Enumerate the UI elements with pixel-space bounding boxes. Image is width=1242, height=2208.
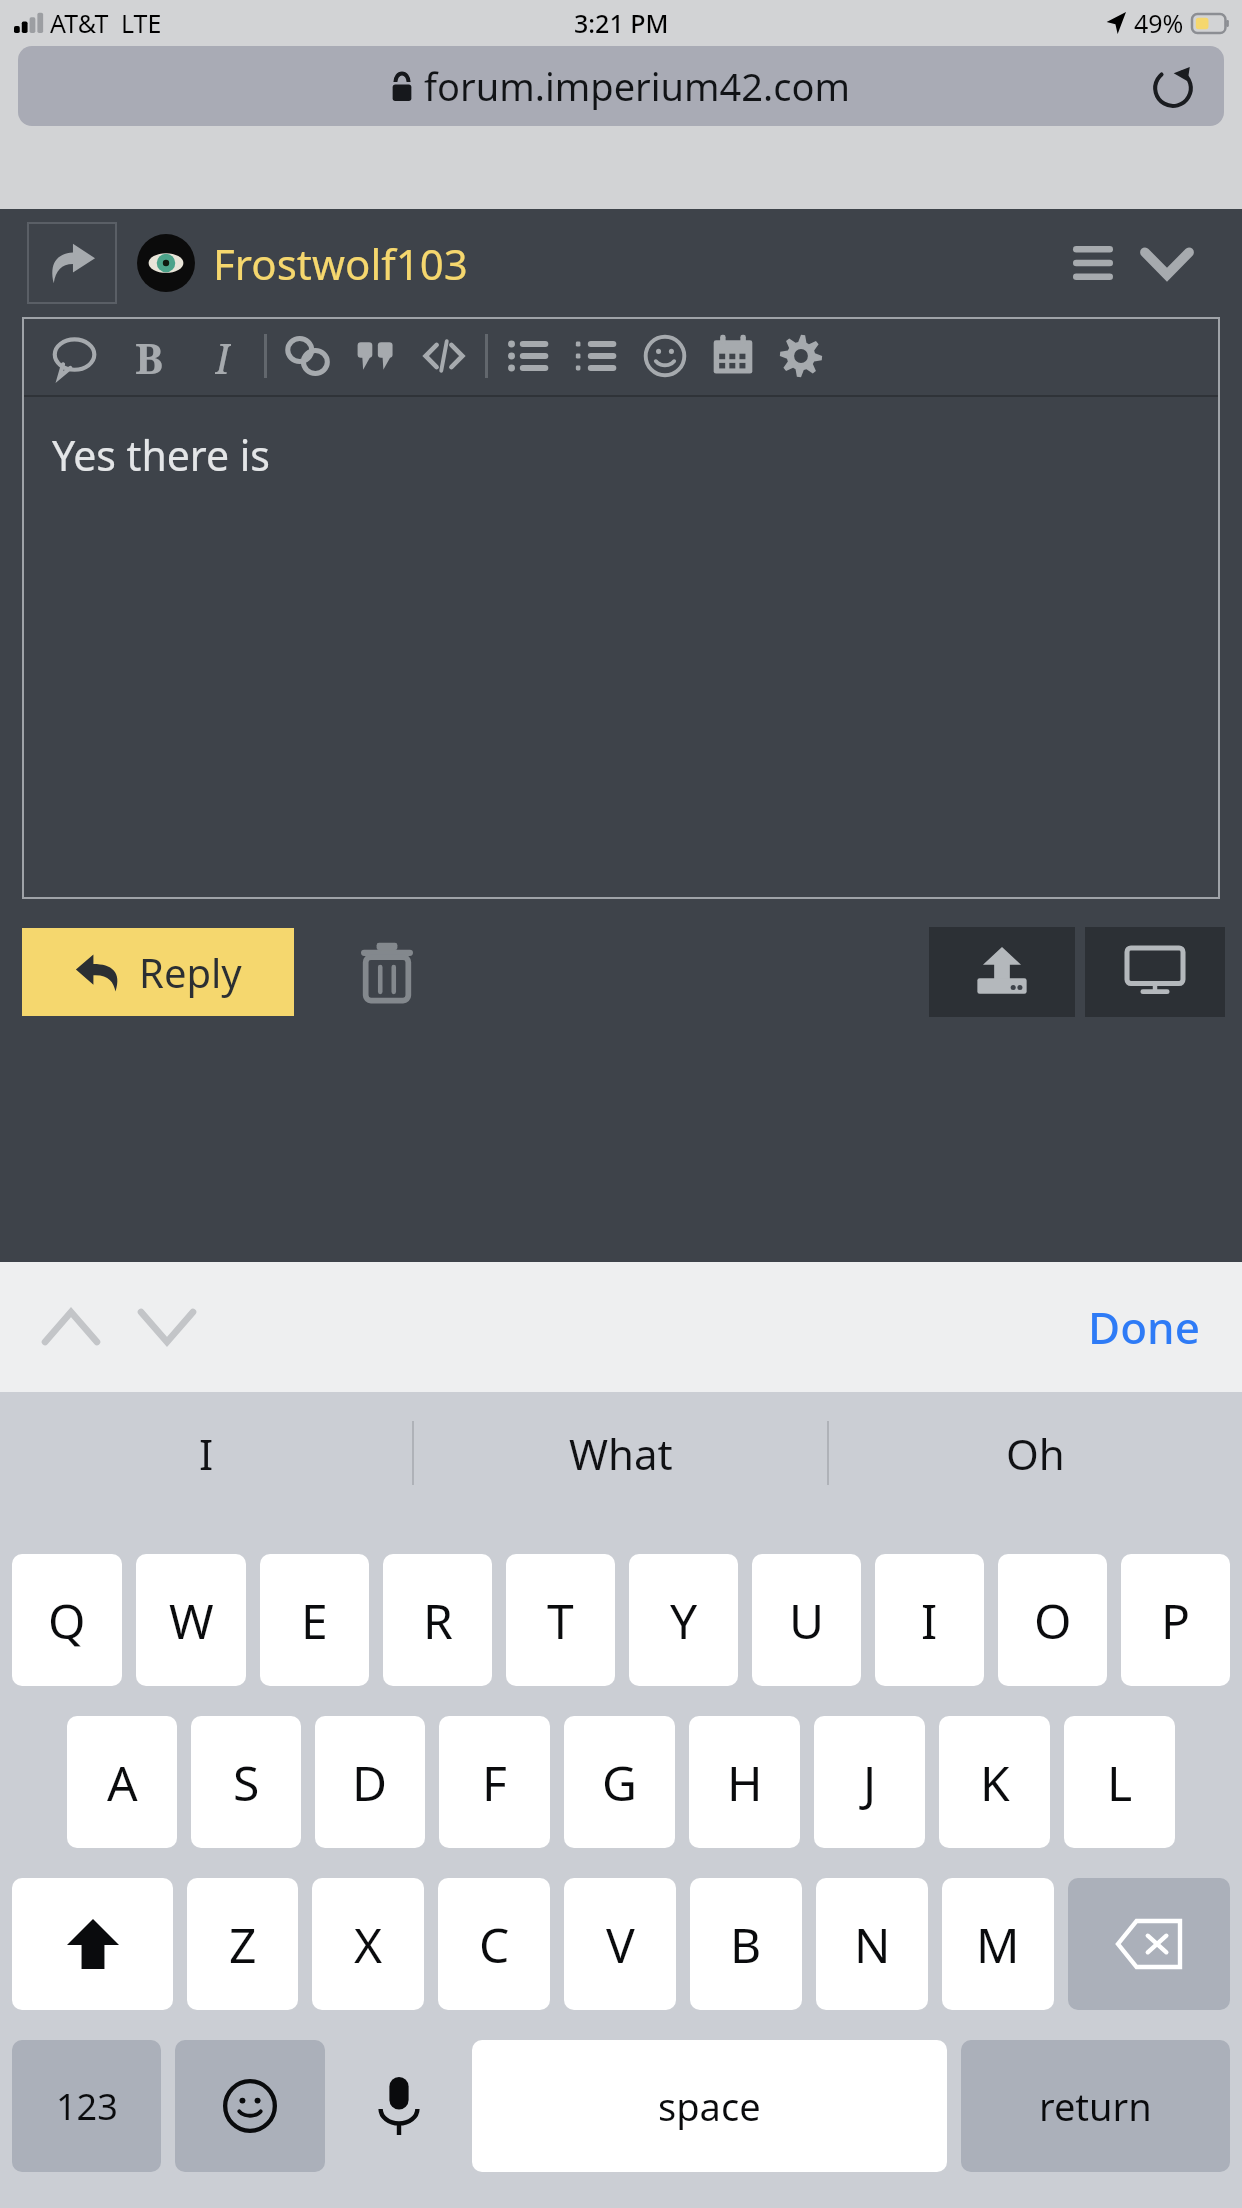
staticText: K [980, 1750, 1010, 1815]
button[interactable]: M [942, 1878, 1054, 2010]
staticText: E [301, 1588, 328, 1653]
staticText: forum.imperium42.com [424, 60, 851, 112]
staticText: L [1107, 1750, 1133, 1815]
staticText: I [199, 1425, 214, 1482]
staticText: Reply [139, 945, 242, 999]
button[interactable]: forum.imperium42.com [18, 46, 1224, 126]
button[interactable]: Reply [22, 928, 294, 1016]
button[interactable]: K [939, 1716, 1050, 1848]
button[interactable]: Delete [350, 932, 424, 1012]
button[interactable]: Y [629, 1554, 738, 1686]
button[interactable]: Format [570, 329, 624, 383]
staticText: N [854, 1912, 891, 1977]
button[interactable]: D [315, 1716, 425, 1848]
button[interactable]: Previous field [30, 1286, 112, 1368]
button[interactable]: S [191, 1716, 301, 1848]
staticText: I [921, 1588, 938, 1653]
staticText: S [233, 1750, 260, 1815]
staticText: O [1034, 1588, 1072, 1653]
button[interactable]: Preview [1085, 927, 1225, 1017]
button[interactable]: B [690, 1878, 802, 2010]
button[interactable]: Q [12, 1554, 122, 1686]
button[interactable]: Expand [1140, 236, 1194, 290]
button[interactable]: I [0, 1392, 412, 1514]
button[interactable]: Format [774, 329, 828, 383]
button[interactable]: Reload [1146, 59, 1200, 113]
button[interactable]: P [1121, 1554, 1230, 1686]
button[interactable]: I [196, 329, 250, 383]
staticText: LTE [121, 6, 162, 40]
staticText: J [863, 1750, 877, 1815]
staticText: F [482, 1750, 507, 1815]
staticText: V [606, 1912, 635, 1977]
button[interactable]: Upload [929, 927, 1075, 1017]
button[interactable]: What [414, 1392, 827, 1514]
button[interactable]: B [122, 329, 176, 383]
button[interactable]: F [439, 1716, 550, 1848]
staticText: 49% [1134, 6, 1184, 40]
button[interactable]: Oh [829, 1392, 1242, 1514]
button[interactable]: W [136, 1554, 246, 1686]
staticText: B [730, 1912, 762, 1977]
button[interactable]: X [312, 1878, 424, 2010]
button[interactable]: Done [1088, 1297, 1200, 1357]
staticText: U [789, 1588, 825, 1653]
button[interactable]: R [383, 1554, 492, 1686]
button[interactable]: C [438, 1878, 550, 2010]
staticText: Done [1088, 1297, 1200, 1357]
button[interactable]: T [506, 1554, 615, 1686]
staticText: X [354, 1912, 383, 1977]
button[interactable]: Format [638, 329, 692, 383]
button[interactable]: Share [27, 222, 117, 304]
button[interactable]: E [260, 1554, 369, 1686]
staticText: C [479, 1912, 510, 1977]
button[interactable]: Format [48, 329, 102, 383]
button[interactable]: A [67, 1716, 177, 1848]
button[interactable] [137, 234, 195, 292]
staticText: Yes there is [52, 427, 270, 483]
staticText: Y [670, 1588, 698, 1653]
button[interactable]: Format [502, 329, 556, 383]
button[interactable]: Format [349, 329, 403, 383]
button[interactable]: G [564, 1716, 675, 1848]
staticText: P [1161, 1588, 1191, 1653]
staticText: Q [48, 1588, 86, 1653]
button[interactable]: H [689, 1716, 800, 1848]
button[interactable]: I [875, 1554, 984, 1686]
staticText: R [423, 1588, 453, 1653]
button[interactable]: Next field [126, 1286, 208, 1368]
staticText: 3:21 PM [574, 6, 669, 40]
staticText: T [547, 1588, 574, 1653]
staticText: W [169, 1588, 214, 1653]
button[interactable]: Format [706, 329, 760, 383]
button[interactable]: V [564, 1878, 676, 2010]
staticText: M [976, 1912, 1020, 1977]
button[interactable]: N [816, 1878, 928, 2010]
button[interactable]: O [998, 1554, 1107, 1686]
button[interactable]: 123 [12, 2040, 161, 2172]
staticText: Oh [1006, 1425, 1065, 1482]
button[interactable]: Emoji [175, 2040, 325, 2172]
staticText: What [569, 1425, 673, 1482]
button[interactable]: Shift [12, 1878, 173, 2010]
button[interactable]: Format [281, 329, 335, 383]
staticText: A [107, 1750, 138, 1815]
staticText: 123 [56, 2082, 118, 2131]
button[interactable]: return [961, 2040, 1230, 2172]
staticText: return [1039, 2080, 1152, 2132]
button[interactable]: Backspace [1068, 1878, 1230, 2010]
staticText: space [658, 2080, 761, 2132]
button[interactable]: Menu [1066, 236, 1120, 290]
staticText: G [602, 1750, 637, 1815]
button[interactable]: Frostwolf103 [213, 235, 468, 292]
button[interactable]: L [1064, 1716, 1175, 1848]
staticText: Z [229, 1912, 257, 1977]
button[interactable]: J [814, 1716, 925, 1848]
button[interactable]: space [472, 2040, 947, 2172]
button[interactable]: U [752, 1554, 861, 1686]
button[interactable]: Format [417, 329, 471, 383]
staticText: H [727, 1750, 763, 1815]
button[interactable]: Dictate [339, 2040, 458, 2172]
button[interactable]: Z [187, 1878, 298, 2010]
staticText: B [135, 329, 164, 383]
